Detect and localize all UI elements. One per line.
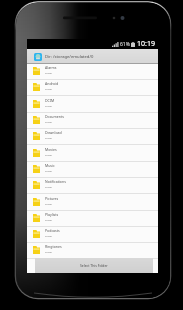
staticText: Folder: [45, 87, 53, 90]
button[interactable]: DCIM: [27, 97, 158, 113]
staticText: Folder: [45, 218, 53, 221]
staticText: Folder: [45, 185, 53, 188]
button[interactable]: Podcasts: [27, 227, 158, 243]
button[interactable]: Notifications: [27, 178, 158, 194]
staticText: Podcasts: [45, 228, 60, 233]
staticText: Folder: [45, 136, 53, 139]
staticText: Alarms: [45, 65, 57, 70]
staticText: 61%: [120, 41, 130, 48]
button[interactable]: Dir: /storage/emulated/0: [27, 49, 158, 64]
staticText: Folder: [45, 153, 53, 156]
staticText: Folder: [45, 250, 53, 253]
staticText: Movies: [45, 147, 57, 152]
button[interactable]: Download: [27, 129, 158, 145]
staticText: Folder: [45, 234, 53, 237]
button[interactable]: Alarms: [27, 64, 158, 80]
staticText: Documents: [45, 114, 64, 119]
staticText: Music: [45, 163, 55, 168]
staticText: Folder: [45, 104, 53, 107]
staticText: Notifications: [45, 179, 66, 184]
staticText: Folder: [45, 169, 53, 172]
staticText: Download: [45, 130, 62, 135]
staticText: Playlists: [45, 212, 59, 217]
button[interactable]: Playlists: [27, 211, 158, 227]
staticText: Dir: /storage/emulated/0: [45, 54, 94, 60]
button[interactable]: Pictures: [27, 195, 158, 211]
button[interactable]: Android: [27, 80, 158, 96]
staticText: Pictures: [45, 196, 59, 201]
button[interactable]: Movies: [27, 146, 158, 162]
staticText: DCIM: [45, 98, 55, 103]
staticText: Ringtones: [45, 244, 62, 249]
staticText: Folder: [45, 202, 53, 205]
button[interactable]: Select This Folder: [35, 258, 153, 273]
staticText: 10:19: [137, 39, 155, 49]
button[interactable]: Ringtones: [27, 243, 158, 259]
staticText: Select This Folder: [80, 263, 108, 268]
button[interactable]: Documents: [27, 113, 158, 129]
button[interactable]: Music: [27, 162, 158, 178]
staticText: Android: [45, 81, 59, 86]
staticText: Folder: [45, 120, 53, 123]
staticText: Folder: [45, 71, 53, 74]
